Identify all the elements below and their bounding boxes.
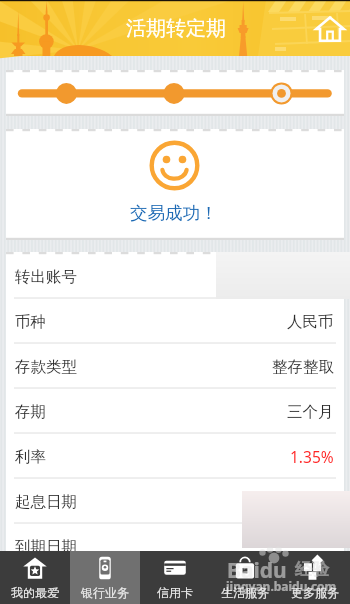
staticText: 三个月 — [287, 402, 334, 422]
staticText: Baidu — [227, 556, 287, 585]
staticText: 信用卡 — [157, 585, 193, 600]
staticText: jingyan.baidu.com — [226, 578, 337, 594]
button[interactable]: 起息日期 — [6, 479, 344, 524]
staticText: 利率 — [15, 447, 46, 467]
button[interactable]: 利率 — [6, 434, 344, 479]
button[interactable]: 存款类型 — [6, 344, 344, 389]
button[interactable]: 银行业务 — [70, 551, 140, 604]
staticText: 交易成功！ — [130, 202, 218, 224]
staticText: 整存整取 — [272, 357, 334, 377]
staticText: 转出账号 — [15, 267, 77, 287]
staticText: 人民币 — [287, 312, 334, 332]
staticText: 更多服务 — [291, 585, 339, 600]
button[interactable]: 生活服务 — [210, 551, 280, 604]
staticText: 经验 — [295, 559, 329, 580]
button[interactable]: 更多服务 — [280, 551, 350, 604]
staticText: 1.35% — [290, 446, 334, 467]
staticText: 生活服务 — [221, 585, 269, 600]
button[interactable]: Home — [316, 16, 344, 42]
staticText: 币种 — [15, 312, 46, 332]
button[interactable]: 币种 — [6, 299, 344, 344]
staticText: 我的最爱 — [11, 585, 59, 600]
staticText: 活期转定期 — [126, 16, 226, 41]
staticText: 到期日期 — [15, 537, 77, 557]
button[interactable]: 存期 — [6, 389, 344, 434]
button[interactable]: 信用卡 — [140, 551, 210, 604]
staticText: 起息日期 — [15, 492, 77, 512]
button[interactable]: 到期日期 — [6, 524, 344, 569]
button[interactable]: 我的最爱 — [0, 551, 70, 604]
staticText: 存款类型 — [15, 357, 77, 377]
staticText: 银行业务 — [81, 585, 129, 600]
staticText: 存期 — [15, 402, 46, 422]
button[interactable]: 转出账号 — [6, 254, 344, 299]
